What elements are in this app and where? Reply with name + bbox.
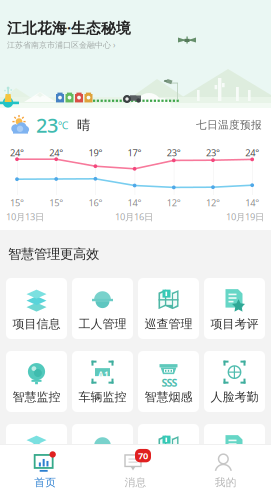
button[interactable]: 项目信息 <box>6 278 67 339</box>
staticText: 12° <box>167 196 181 209</box>
staticText: S <box>171 376 177 390</box>
button[interactable]: S <box>138 351 199 412</box>
staticText: A1 <box>98 369 109 380</box>
button[interactable]: 巡查管理 <box>138 278 199 339</box>
button[interactable]: 项目考评 <box>204 278 265 339</box>
staticText: 智慧管理更高效 <box>8 246 99 262</box>
staticText: 晴 <box>77 117 90 133</box>
staticText: 14° <box>245 196 259 209</box>
staticText: 17° <box>128 146 142 159</box>
staticText: 12° <box>206 196 220 209</box>
staticText: 15° <box>49 196 63 209</box>
staticText: 江苏省南京市浦口区金融中心 › <box>7 39 115 50</box>
staticText: 质量管理 <box>78 463 126 477</box>
staticText: 70 <box>138 449 148 462</box>
button[interactable]: A1 <box>72 351 133 412</box>
button[interactable]: 我的 <box>181 444 271 498</box>
staticText: 10月16日 <box>115 210 153 223</box>
staticText: 24° <box>10 146 24 159</box>
staticText: 车辆监控 <box>78 390 126 404</box>
staticText: 安全管理 <box>12 463 60 477</box>
staticText: 14° <box>128 196 142 209</box>
staticText: 23° <box>167 146 181 159</box>
staticText: 15° <box>10 196 24 209</box>
staticText: 消息 <box>124 476 146 489</box>
staticText: 智慧烟感 <box>144 390 192 404</box>
staticText: 24° <box>245 146 259 159</box>
staticText: 工人管理 <box>78 317 126 331</box>
button[interactable]: 首页 <box>0 444 90 498</box>
staticText: 10月19日 <box>226 210 264 223</box>
button[interactable]: 能耗管理 <box>204 424 265 485</box>
staticText: 19° <box>88 146 102 159</box>
button[interactable]: 消息 <box>90 444 181 498</box>
staticText: 巡查管理 <box>144 317 192 331</box>
staticText: S <box>166 376 172 390</box>
button[interactable]: 质量管理 <box>72 424 133 485</box>
button[interactable]: 工人管理 <box>72 278 133 339</box>
staticText: 七日温度预报 <box>196 118 262 131</box>
button[interactable]: 智慧监控 <box>6 351 67 412</box>
staticText: ℃ <box>58 118 69 132</box>
staticText: 24° <box>49 146 63 159</box>
staticText: 江北花海·生态秘境 <box>7 18 131 37</box>
button[interactable]: 人脸考勤 <box>204 351 265 412</box>
button[interactable]: 安全管理 <box>6 424 67 485</box>
staticText: 23° <box>206 146 220 159</box>
button[interactable]: 物料管理 <box>138 424 199 485</box>
staticText: 首页 <box>34 476 56 489</box>
staticText: 项目信息 <box>12 317 60 331</box>
staticText: 23 <box>36 112 58 138</box>
staticText: 我的 <box>215 476 237 489</box>
staticText: S <box>161 376 167 390</box>
staticText: 16° <box>88 196 102 209</box>
staticText: 10月13日 <box>6 210 44 223</box>
staticText: 智慧监控 <box>12 390 60 404</box>
staticText: 项目考评 <box>210 317 258 331</box>
staticText: 能耗管理 <box>210 463 258 477</box>
staticText: 人脸考勤 <box>210 390 258 404</box>
